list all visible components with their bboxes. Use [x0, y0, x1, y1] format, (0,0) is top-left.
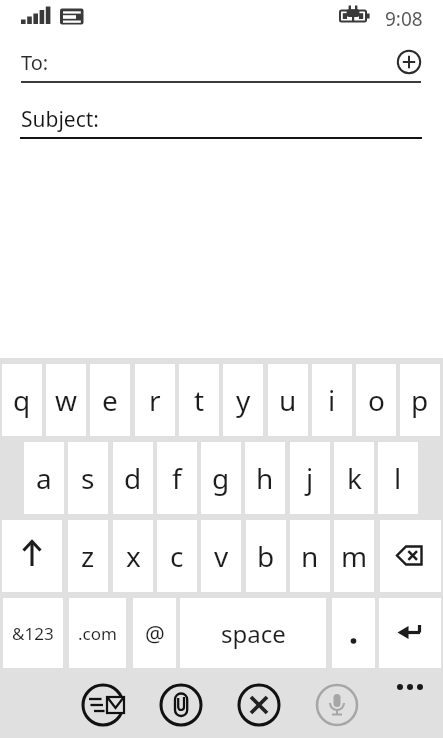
button[interactable]: @ [133, 598, 176, 668]
button[interactable]: v [201, 520, 241, 592]
staticText: y [236, 381, 251, 419]
button[interactable]: n [290, 520, 330, 592]
button[interactable]: t [179, 364, 219, 436]
button[interactable]: f [157, 442, 197, 514]
staticText: k [347, 459, 362, 497]
button[interactable] [82, 684, 124, 726]
button[interactable]: m [334, 520, 374, 592]
button[interactable]: .com [69, 598, 126, 668]
staticText: f [172, 459, 182, 497]
button[interactable]: &123 [3, 598, 63, 668]
staticText: To: [21, 49, 49, 76]
staticText: c [170, 537, 184, 575]
button[interactable]: h [245, 442, 285, 514]
button[interactable]: p [400, 364, 440, 436]
button[interactable] [238, 684, 280, 726]
button[interactable]: x [113, 520, 153, 592]
staticText: m [341, 537, 368, 575]
button[interactable]: j [290, 442, 330, 514]
button[interactable] [0, 96, 443, 140]
button[interactable]: y [223, 364, 263, 436]
button[interactable]: s [68, 442, 108, 514]
button[interactable]: z [68, 520, 108, 592]
button[interactable]: g [201, 442, 241, 514]
button[interactable]: r [135, 364, 175, 436]
button[interactable] [332, 598, 375, 668]
staticText: o [368, 381, 385, 419]
staticText: v [214, 537, 229, 575]
staticText: Subject: [21, 105, 99, 134]
button[interactable]: o [356, 364, 396, 436]
staticText: &123 [12, 622, 54, 645]
button[interactable]: l [378, 442, 418, 514]
staticText: d [124, 459, 142, 497]
button[interactable]: i [312, 364, 352, 436]
button[interactable]: b [246, 520, 286, 592]
button[interactable]: u [268, 364, 308, 436]
button[interactable] [379, 598, 441, 668]
staticText: z [81, 537, 95, 575]
staticText: u [279, 381, 297, 419]
staticText: i [328, 381, 336, 419]
staticText: b [257, 537, 275, 575]
button[interactable]: e [90, 364, 130, 436]
staticText: a [36, 459, 52, 497]
button[interactable]: c [157, 520, 197, 592]
button[interactable]: k [334, 442, 374, 514]
button[interactable] [2, 520, 62, 592]
button[interactable]: a [24, 442, 64, 514]
button[interactable] [396, 49, 422, 75]
staticText: w [55, 381, 78, 419]
button[interactable]: space [180, 598, 326, 668]
staticText: 9:08 [385, 6, 423, 32]
staticText: e [102, 381, 118, 419]
staticText: space [221, 617, 286, 650]
staticText: j [306, 459, 314, 497]
button[interactable]: d [113, 442, 153, 514]
button[interactable]: w [46, 364, 86, 436]
button[interactable] [0, 40, 390, 84]
button[interactable] [380, 520, 441, 592]
staticText: l [394, 459, 402, 497]
staticText: g [212, 459, 230, 497]
staticText: s [81, 459, 95, 497]
staticText: q [13, 381, 31, 419]
button[interactable] [160, 684, 202, 726]
button[interactable]: q [2, 364, 42, 436]
staticText: t [194, 381, 205, 419]
staticText: r [149, 381, 161, 419]
staticText: .com [78, 622, 117, 645]
staticText: x [126, 537, 141, 575]
staticText: p [411, 381, 429, 419]
staticText: h [256, 459, 274, 497]
button[interactable] [392, 678, 428, 696]
staticText: @ [145, 618, 165, 648]
staticText: n [301, 537, 319, 575]
button[interactable] [316, 684, 358, 726]
